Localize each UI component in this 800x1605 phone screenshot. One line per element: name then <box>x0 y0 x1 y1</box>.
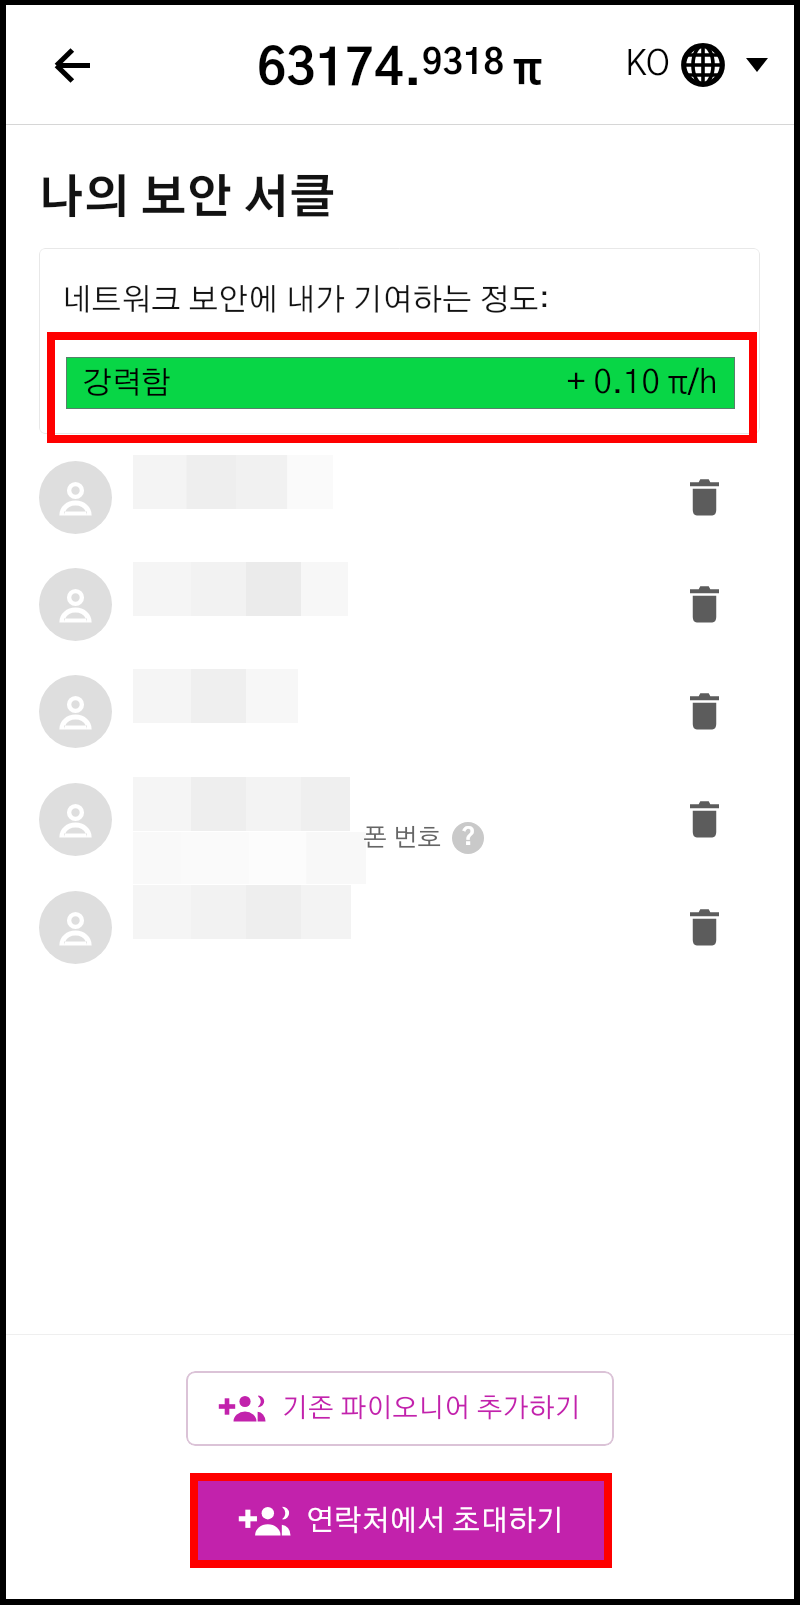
staticText: 나의 보안 서클 <box>38 176 336 222</box>
staticText: KO <box>625 48 670 82</box>
button[interactable]: 연락처에서 초대하기 <box>198 1480 604 1562</box>
button[interactable]: 기존 파이오니어 추가하기 <box>186 1371 614 1446</box>
button[interactable]: Change language <box>625 43 768 87</box>
button[interactable]: Delete <box>676 791 732 847</box>
staticText: 네트워크 보안에 내가 기여하는 정도: <box>62 285 550 316</box>
staticText: 연락처에서 초대하기 <box>306 1507 564 1536</box>
staticText: 9318 <box>422 46 505 81</box>
button[interactable]: Delete <box>676 683 732 739</box>
staticText: 기존 파이오니어 추가하기 <box>282 1395 581 1422</box>
button[interactable]: Delete <box>6 461 794 534</box>
other: Help <box>452 822 484 854</box>
button[interactable]: 강력함 <box>66 357 735 409</box>
staticText: 폰 번호 <box>363 826 442 851</box>
staticText: π <box>513 48 542 93</box>
button[interactable]: Delete <box>6 568 794 641</box>
button[interactable]: Delete <box>6 675 794 748</box>
button[interactable]: Delete <box>676 469 732 525</box>
button[interactable]: 폰 번호 <box>363 822 484 854</box>
button[interactable]: Delete <box>6 891 794 964</box>
staticText: ? <box>461 826 476 850</box>
button[interactable]: Back <box>35 27 111 103</box>
button[interactable]: Delete <box>676 899 732 955</box>
button[interactable]: Delete <box>676 576 732 632</box>
staticText: 63174. <box>257 45 422 95</box>
staticText: 강력함 <box>82 368 172 399</box>
staticText: + 0.10 π/h <box>567 367 718 400</box>
button[interactable]: Delete <box>6 783 794 856</box>
